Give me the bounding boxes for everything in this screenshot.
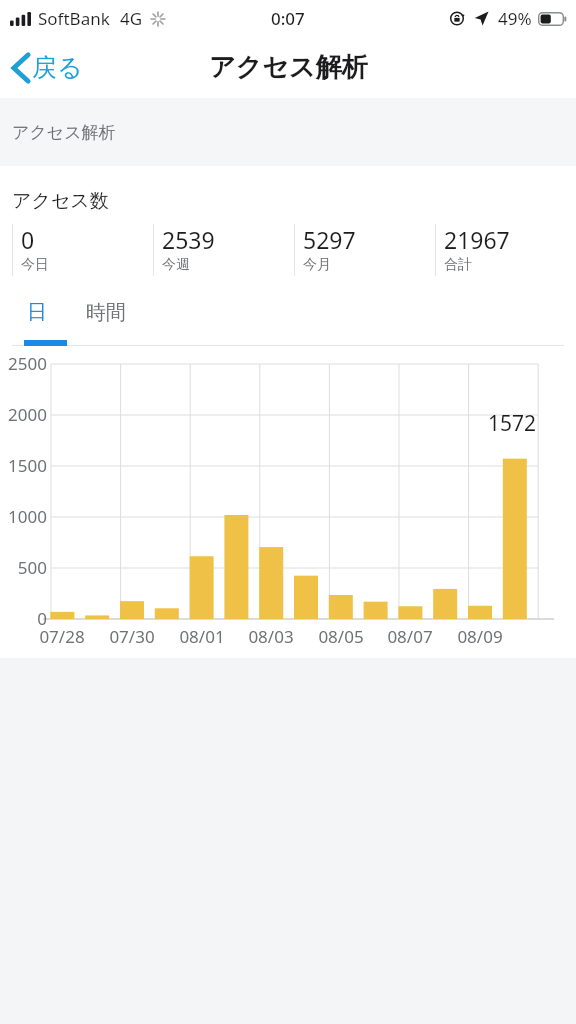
staticText: 07/30: [98, 625, 166, 648]
staticText: 49%: [498, 7, 532, 30]
button[interactable]: 戻る: [0, 44, 97, 91]
staticText: 今週: [162, 256, 190, 274]
button[interactable]: 日: [22, 297, 52, 328]
staticText: 07/28: [28, 625, 96, 648]
staticText: 時間: [86, 300, 126, 325]
staticText: 0: [2, 607, 47, 630]
staticText: アクセス解析: [209, 51, 368, 84]
staticText: 0:07: [271, 7, 305, 30]
staticText: 21967: [444, 224, 510, 255]
staticText: 500: [2, 556, 47, 579]
staticText: 今月: [303, 256, 331, 274]
staticText: 合計: [444, 256, 472, 274]
staticText: 戻る: [32, 52, 83, 83]
button[interactable]: 時間: [81, 297, 131, 328]
staticText: 5297: [303, 224, 356, 255]
staticText: 08/09: [446, 625, 514, 648]
staticText: SoftBank: [38, 7, 110, 30]
staticText: 2000: [2, 403, 47, 426]
staticText: 4G: [120, 7, 143, 30]
staticText: アクセス解析: [12, 122, 116, 143]
staticText: 08/05: [307, 625, 375, 648]
staticText: 08/07: [376, 625, 444, 648]
staticText: 1000: [2, 505, 47, 528]
staticText: 今日: [21, 256, 49, 274]
staticText: 1500: [2, 454, 47, 477]
staticText: 1572: [478, 409, 546, 438]
staticText: 08/03: [237, 625, 305, 648]
staticText: 2500: [2, 352, 47, 375]
staticText: 日: [27, 300, 47, 325]
staticText: 0: [21, 224, 35, 255]
staticText: 08/01: [168, 625, 236, 648]
staticText: アクセス数: [12, 189, 109, 213]
staticText: 2539: [162, 224, 215, 255]
